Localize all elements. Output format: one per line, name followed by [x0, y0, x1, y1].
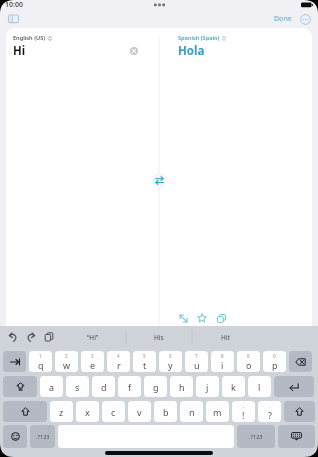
button[interactable]: 7 — [185, 351, 208, 372]
button[interactable]: 3 — [81, 351, 104, 372]
staticText: Hit — [221, 333, 230, 342]
button[interactable]: b — [154, 401, 177, 422]
staticText: Spanish (Spain) — [178, 34, 220, 42]
button[interactable]: Hit — [192, 326, 258, 348]
staticText: 7 — [195, 353, 198, 359]
button[interactable]: d — [92, 376, 115, 397]
button[interactable]: j — [196, 376, 219, 397]
button[interactable]: Clear text — [126, 43, 142, 59]
staticText: v — [137, 406, 142, 418]
button[interactable]: Swap languages — [152, 173, 167, 188]
button[interactable]: Numbers — [30, 425, 55, 448]
button[interactable]: 6 — [159, 351, 182, 372]
button[interactable]: Return — [274, 376, 314, 397]
button[interactable]: “Hi” — [60, 326, 126, 348]
staticText: 3 — [91, 353, 94, 359]
staticText: 8 — [221, 353, 224, 359]
button[interactable]: Favorite — [195, 311, 209, 325]
button[interactable]: s — [66, 376, 89, 397]
staticText: His — [154, 333, 164, 342]
staticText: “Hi” — [87, 333, 99, 342]
button[interactable]: 5 — [133, 351, 156, 372]
button[interactable]: m — [206, 401, 229, 422]
staticText: 9 — [247, 353, 250, 359]
button[interactable]: Emoji — [3, 425, 27, 448]
staticText: w — [63, 359, 71, 371]
button[interactable]: 1 — [29, 351, 52, 372]
staticText: l — [258, 381, 261, 393]
button[interactable]: v — [128, 401, 151, 422]
staticText: d — [101, 381, 107, 393]
staticText: e — [90, 359, 96, 371]
staticText: 1 — [39, 353, 42, 359]
button[interactable]: Show sidebar — [7, 14, 21, 24]
staticText: 5 — [143, 353, 146, 359]
staticText: c — [111, 406, 116, 418]
button[interactable]: Numbers — [237, 425, 275, 448]
button[interactable]: f — [118, 376, 141, 397]
button[interactable]: x — [76, 401, 99, 422]
button[interactable]: Hide keyboard — [278, 425, 315, 448]
button[interactable]: Expand — [176, 311, 190, 325]
staticText: . — [269, 403, 271, 409]
staticText: u — [194, 359, 200, 371]
staticText: r — [117, 359, 121, 371]
staticText: o — [246, 359, 252, 371]
button[interactable]: Tab — [3, 351, 26, 372]
button[interactable]: c — [102, 401, 125, 422]
staticText: t — [143, 359, 147, 371]
button[interactable]: 9 — [237, 351, 260, 372]
staticText: k — [231, 381, 236, 393]
button[interactable]: Shift — [284, 401, 315, 422]
staticText: 4 — [117, 353, 120, 359]
button[interactable]: His — [126, 326, 192, 348]
button[interactable]: Redo — [26, 332, 36, 342]
button[interactable]: l — [248, 376, 271, 397]
button[interactable]: k — [222, 376, 245, 397]
staticText: i — [221, 359, 224, 371]
staticText: 2 — [65, 353, 68, 359]
staticText: a — [49, 381, 55, 393]
staticText: f — [128, 381, 132, 393]
button[interactable]: Done — [271, 13, 295, 25]
staticText: 6 — [169, 353, 172, 359]
staticText: ! — [242, 409, 245, 421]
button[interactable]: 4 — [107, 351, 130, 372]
staticText: ? — [268, 409, 272, 421]
staticText: n — [189, 406, 195, 418]
staticText: b — [163, 406, 169, 418]
staticText: g — [153, 381, 159, 393]
button[interactable]: a — [40, 376, 63, 397]
staticText: .?123 — [249, 433, 263, 441]
staticText: s — [75, 381, 80, 393]
button[interactable]: Copy — [214, 311, 228, 325]
button[interactable]: g — [144, 376, 167, 397]
staticText: 0 — [273, 353, 276, 359]
button[interactable]: , — [232, 401, 255, 422]
staticText: z — [59, 406, 64, 418]
button[interactable]: Shift — [3, 401, 47, 422]
staticText: , — [243, 403, 245, 409]
staticText: h — [179, 381, 185, 393]
button[interactable]: 2 — [55, 351, 78, 372]
staticText: English (US) — [13, 34, 46, 42]
button[interactable]: 0 — [263, 351, 286, 372]
button[interactable]: Backspace — [289, 351, 312, 372]
staticText: p — [272, 359, 278, 371]
button[interactable]: 8 — [211, 351, 234, 372]
button[interactable]: Paste — [44, 332, 54, 342]
button[interactable]: More options — [300, 14, 311, 25]
staticText: j — [206, 381, 209, 393]
button[interactable]: . — [258, 401, 281, 422]
button[interactable]: Undo — [8, 332, 18, 342]
button[interactable]: z — [50, 401, 73, 422]
staticText: m — [213, 406, 222, 418]
button[interactable]: n — [180, 401, 203, 422]
staticText: Hola — [178, 43, 205, 59]
button[interactable]: Caps lock — [3, 376, 37, 397]
staticText: y — [168, 359, 173, 371]
button[interactable]: h — [170, 376, 193, 397]
staticText: q — [38, 359, 44, 371]
staticText: 10:00 — [5, 0, 23, 10]
